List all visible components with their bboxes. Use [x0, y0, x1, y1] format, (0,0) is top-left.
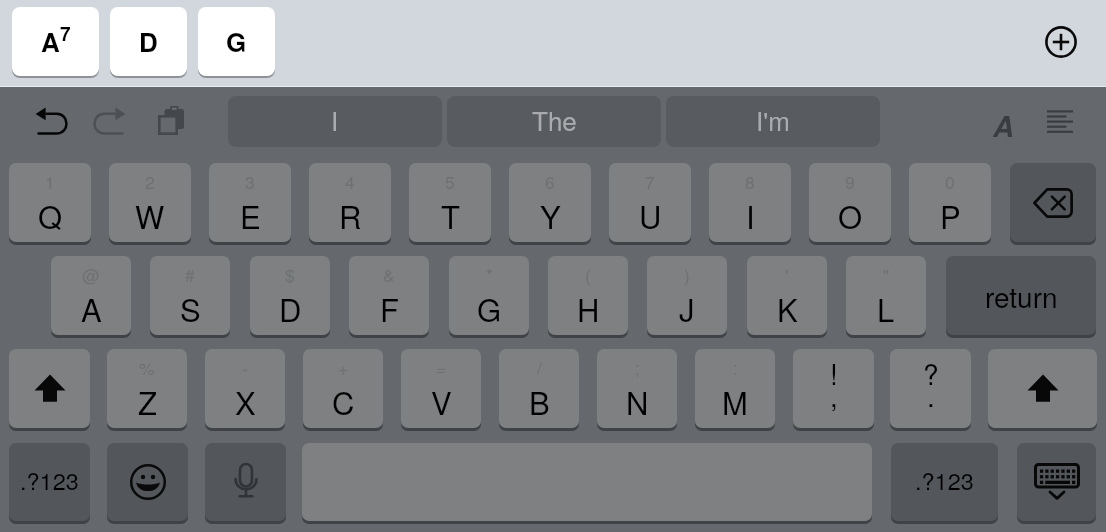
staticText: O: [838, 193, 863, 237]
staticText: 2: [145, 169, 155, 194]
button[interactable]: .?123: [891, 443, 998, 521]
staticText: P: [940, 193, 961, 237]
button[interactable]: 6: [509, 163, 591, 242]
staticText: .?123: [20, 463, 79, 497]
button[interactable]: ;: [597, 349, 677, 428]
button[interactable]: +: [303, 349, 383, 428]
button[interactable]: 9: [809, 163, 891, 242]
button[interactable]: G: [198, 7, 275, 76]
button[interactable]: ': [747, 256, 827, 335]
staticText: Y: [540, 193, 561, 237]
button[interactable]: Text style: [988, 104, 1018, 140]
button[interactable]: Dictation: [205, 443, 286, 521]
button[interactable]: Hide keyboard: [1017, 443, 1096, 521]
staticText: I: [331, 101, 339, 138]
staticText: X: [235, 379, 256, 423]
button[interactable]: ": [846, 256, 926, 335]
staticText: M: [722, 379, 748, 423]
staticText: W: [135, 193, 165, 237]
staticText: G: [226, 23, 247, 60]
staticText: 7: [645, 169, 655, 194]
button[interactable]: ?: [890, 349, 971, 428]
button[interactable]: Backspace: [1010, 163, 1096, 242]
button[interactable]: 2: [109, 163, 191, 242]
button[interactable]: 3: [209, 163, 291, 242]
staticText: =: [436, 355, 447, 380]
button[interactable]: 0: [909, 163, 991, 242]
staticText: +: [338, 355, 349, 380]
staticText: G: [477, 286, 502, 330]
button[interactable]: return: [946, 256, 1096, 335]
staticText: 7: [60, 20, 71, 47]
staticText: *: [486, 262, 493, 287]
button[interactable]: Shift: [988, 349, 1097, 428]
staticText: (: [585, 262, 591, 287]
staticText: 4: [345, 169, 355, 194]
button[interactable]: &: [349, 256, 429, 335]
button[interactable]: 8: [709, 163, 791, 242]
button[interactable]: A: [12, 7, 99, 76]
staticText: C: [332, 379, 355, 423]
button[interactable]: 7: [609, 163, 691, 242]
button[interactable]: Emoji: [107, 443, 188, 521]
button[interactable]: =: [401, 349, 481, 428]
button[interactable]: @: [51, 256, 131, 335]
staticText: J: [679, 286, 695, 330]
staticText: 5: [445, 169, 455, 194]
button[interactable]: Paste: [156, 103, 188, 135]
button[interactable]: Undo: [33, 105, 67, 137]
staticText: I: [746, 193, 755, 237]
button[interactable]: D: [110, 7, 187, 76]
button[interactable]: 4: [309, 163, 391, 242]
staticText: A: [993, 104, 1014, 140]
button[interactable]: 5: [409, 163, 491, 242]
button[interactable]: *: [449, 256, 529, 335]
button[interactable]: !: [793, 349, 874, 428]
button[interactable]: The: [447, 96, 661, 147]
staticText: /: [537, 355, 542, 380]
staticText: D: [279, 286, 302, 330]
button[interactable]: -: [205, 349, 285, 428]
staticText: V: [431, 379, 452, 423]
staticText: ): [684, 262, 690, 287]
staticText: !: [830, 353, 838, 393]
button[interactable]: :: [695, 349, 775, 428]
staticText: T: [441, 193, 460, 237]
staticText: 0: [945, 169, 955, 194]
staticText: ;: [635, 355, 640, 380]
button[interactable]: Text alignment: [1047, 104, 1075, 138]
staticText: @: [82, 262, 100, 287]
staticText: &: [383, 262, 395, 287]
staticText: E: [240, 193, 261, 237]
button[interactable]: Add chord: [1040, 21, 1082, 63]
button[interactable]: Shift: [9, 349, 90, 428]
button[interactable]: #: [150, 256, 230, 335]
button[interactable]: %: [107, 349, 187, 428]
staticText: B: [529, 379, 550, 423]
button[interactable]: ): [647, 256, 727, 335]
button[interactable]: I: [228, 96, 442, 147]
staticText: F: [380, 286, 399, 330]
staticText: R: [339, 193, 362, 237]
button[interactable]: I'm: [666, 96, 880, 147]
staticText: S: [180, 286, 201, 330]
staticText: H: [577, 286, 600, 330]
button[interactable]: $: [250, 256, 330, 335]
button[interactable]: (: [548, 256, 628, 335]
button[interactable]: /: [499, 349, 579, 428]
staticText: ": [883, 262, 890, 287]
button[interactable]: Redo: [94, 105, 128, 137]
staticText: The: [532, 101, 577, 138]
staticText: I'm: [756, 101, 790, 138]
staticText: 6: [545, 169, 555, 194]
staticText: ': [785, 262, 789, 287]
staticText: D: [139, 23, 158, 60]
button[interactable]: 1: [9, 163, 91, 242]
staticText: K: [777, 286, 798, 330]
button[interactable]: .?123: [9, 443, 90, 521]
staticText: %: [139, 355, 155, 380]
staticText: #: [185, 262, 195, 287]
staticText: .: [927, 375, 935, 415]
